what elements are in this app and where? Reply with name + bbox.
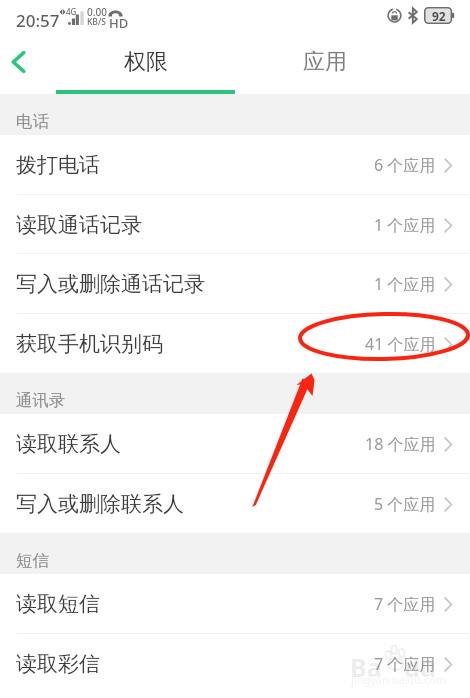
staticText: 短信 (16, 550, 49, 571)
staticText: 拨打电话 (16, 152, 100, 178)
staticText: 写入或删除通话记录 (16, 271, 205, 297)
staticText: 读取彩信 (16, 651, 100, 677)
staticText: du (404, 650, 437, 684)
staticText: 7 个应用 (374, 653, 436, 675)
button[interactable]: 写入或删除联系人 (0, 474, 470, 533)
staticText: 电话 (16, 111, 49, 132)
staticText: 读取通话记录 (16, 212, 142, 238)
staticText: 0.00 (87, 5, 107, 19)
staticText: 获取手机识别码 (16, 331, 163, 357)
staticText: 1 个应用 (374, 214, 436, 236)
staticText: Ba (350, 650, 382, 684)
staticText: 20:57 (16, 9, 60, 32)
staticText: 41 个应用 (365, 333, 436, 355)
staticText: 4G (66, 6, 77, 17)
staticText: 通讯录 (16, 390, 66, 411)
staticText: HD (109, 14, 129, 32)
button[interactable]: 写入或删除通话记录 (0, 254, 470, 314)
staticText: 18 个应用 (365, 433, 436, 455)
button[interactable]: Back (0, 39, 42, 85)
staticText: KB/S (87, 16, 106, 28)
staticText: 7 个应用 (374, 593, 436, 615)
button[interactable]: 读取通话记录 (0, 195, 470, 254)
staticText: 应用 (303, 48, 347, 76)
button[interactable]: 拨打电话 (0, 135, 470, 195)
staticText: jingyan.baidu.com (351, 672, 447, 687)
staticText: 6 个应用 (374, 154, 436, 176)
staticText: 1 个应用 (374, 273, 436, 295)
staticText: 写入或删除联系人 (16, 491, 184, 517)
staticText: 权限 (124, 48, 168, 76)
staticText: 92 (432, 8, 446, 24)
button[interactable]: 应用 (235, 30, 414, 94)
button[interactable]: 读取彩信 (0, 634, 470, 693)
button[interactable]: 权限 (56, 30, 235, 94)
button[interactable]: 读取联系人 (0, 414, 470, 474)
staticText: 读取联系人 (16, 431, 121, 457)
button[interactable]: 读取短信 (0, 574, 470, 634)
staticText: 5 个应用 (374, 493, 436, 515)
staticText: 读取短信 (16, 591, 100, 617)
button[interactable]: 获取手机识别码 (0, 314, 470, 373)
